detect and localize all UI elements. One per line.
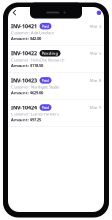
button[interactable]: INV-10421: [8, 19, 104, 45]
staticText: Customer: HelixOne Research: [11, 57, 64, 62]
staticText: Pending: [41, 51, 58, 56]
staticText: Mar 3: [90, 23, 101, 29]
staticText: Paid: [41, 23, 49, 29]
staticText: INV-10421: [11, 23, 37, 30]
staticText: Customer: Lumen Partners: [11, 111, 59, 117]
button[interactable]: INV-10422: [8, 46, 104, 72]
button[interactable]: INV-10423: [8, 73, 104, 99]
staticText: Paid: [41, 78, 49, 83]
staticText: Customer: Ada Lovelace: [11, 30, 54, 35]
staticText: Amount: $42.00: [11, 36, 41, 41]
staticText: INV-10423: [11, 77, 37, 84]
staticText: Amount: $629.00: [11, 90, 43, 95]
staticText: INV-10424: [11, 104, 37, 111]
button[interactable]: INV-10424: [8, 100, 104, 126]
staticText: Mar 9: [90, 105, 101, 110]
staticText: Mar 5: [90, 51, 101, 56]
staticText: Mar 8: [90, 78, 101, 83]
staticText: Amount: $118.50: [11, 63, 43, 68]
staticText: Paid: [41, 105, 49, 110]
button[interactable]: Account: [97, 11, 101, 15]
staticText: Amount: $97.25: [11, 117, 41, 122]
staticText: INV-10422: [11, 50, 37, 57]
staticText: Customer: Northgate Studio: [11, 84, 59, 90]
button[interactable]: Back: [11, 9, 19, 17]
